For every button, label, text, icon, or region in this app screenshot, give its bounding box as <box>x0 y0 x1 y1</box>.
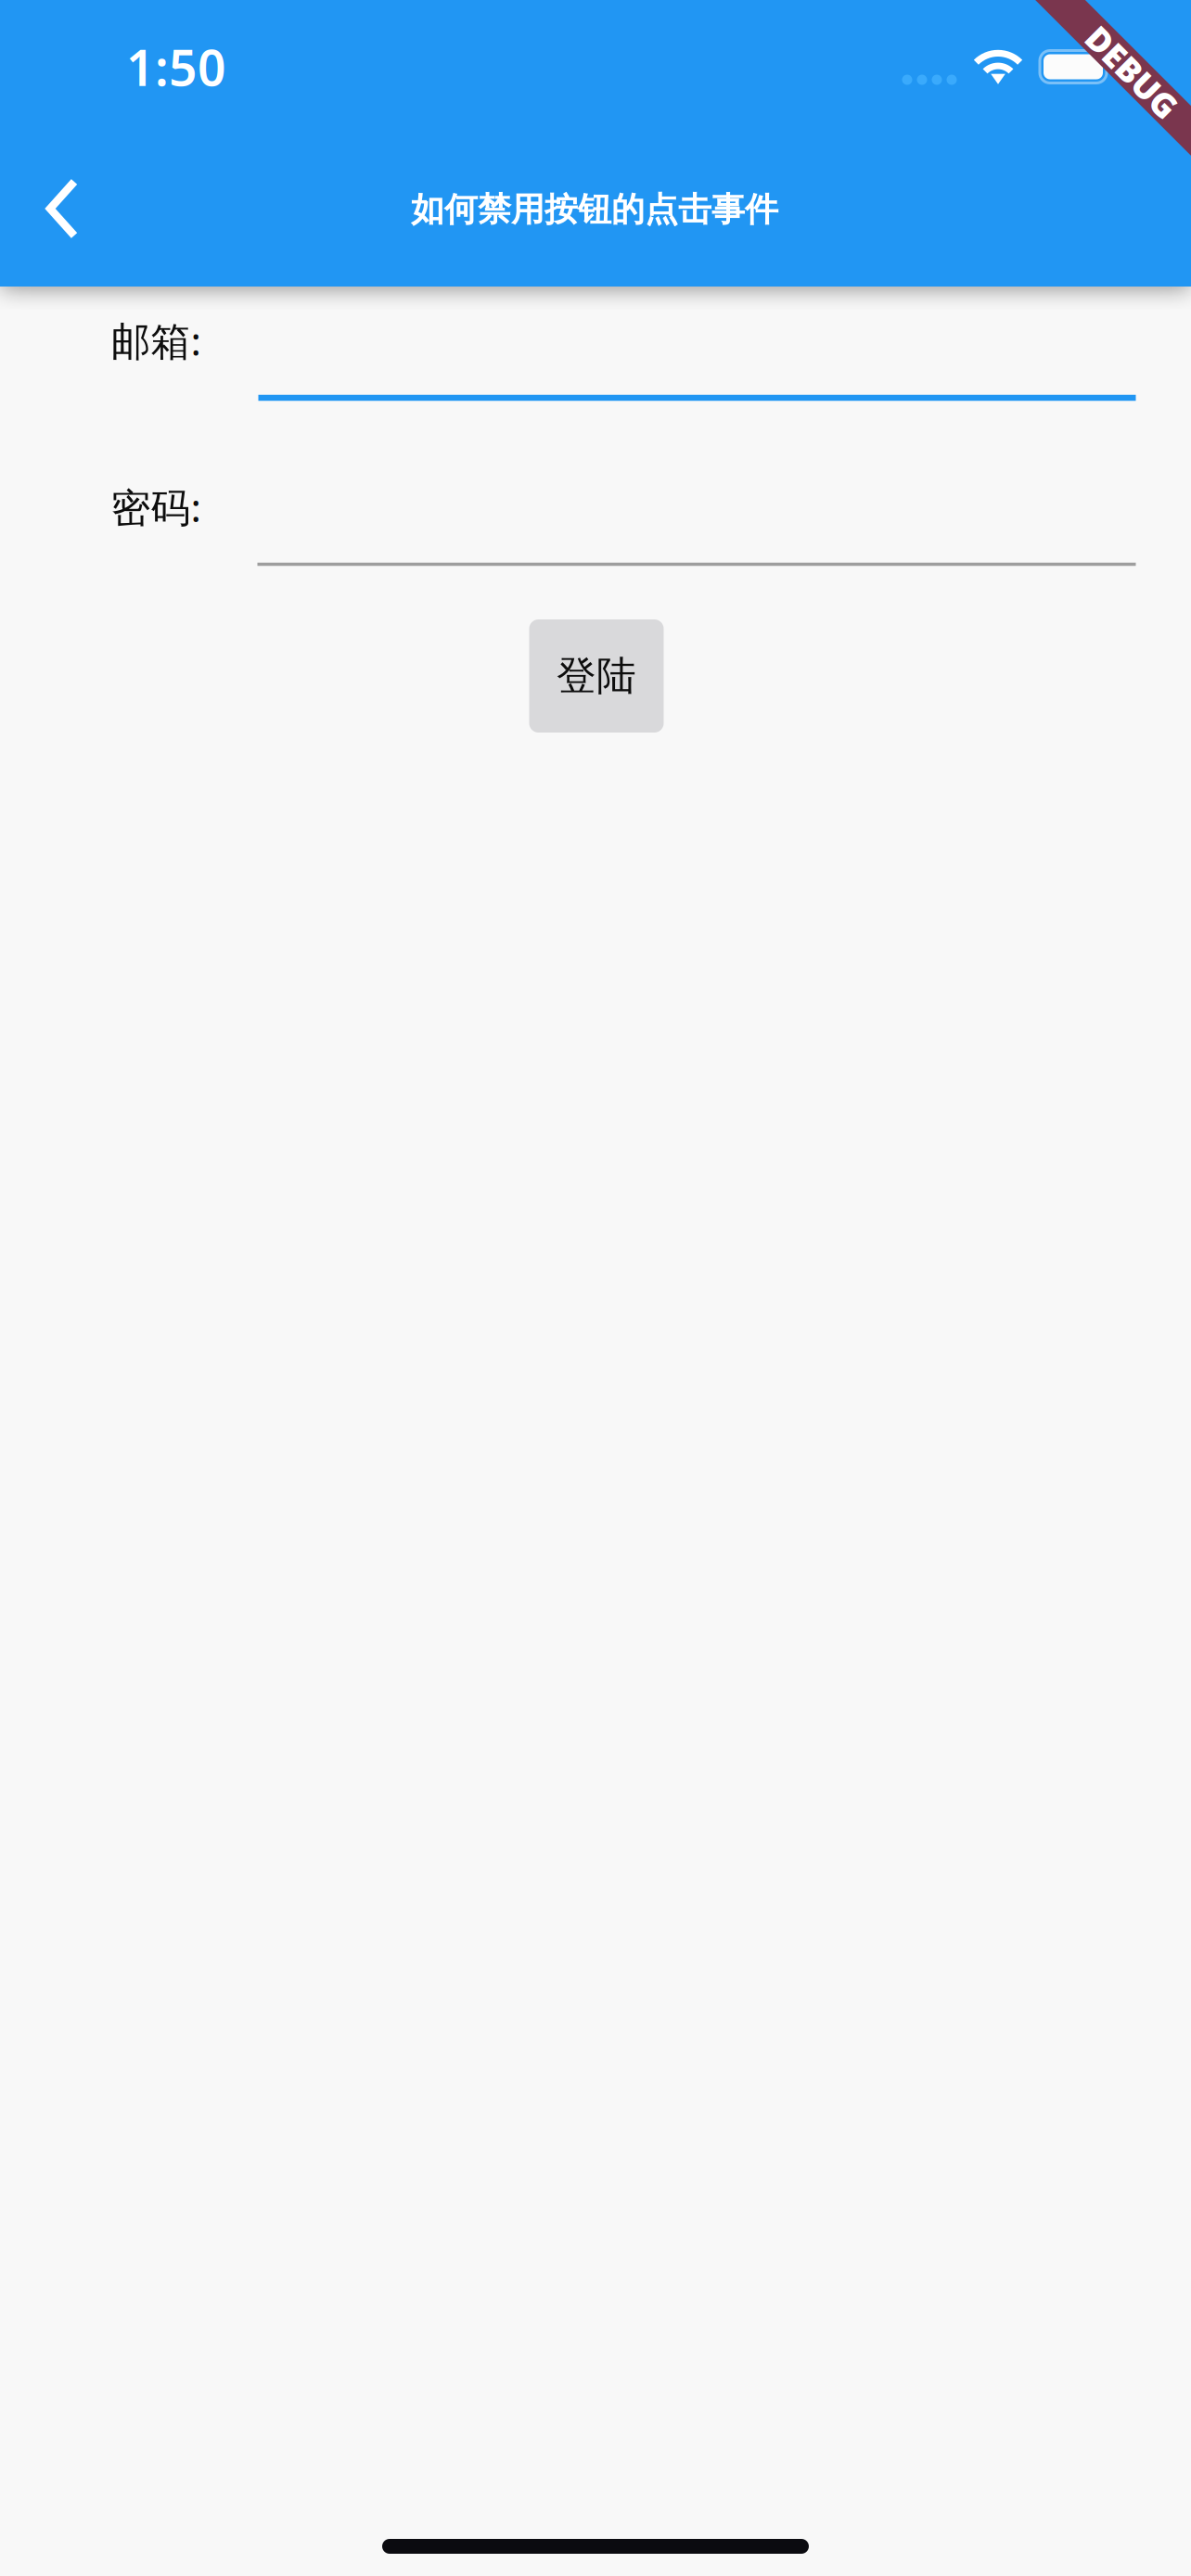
staticText: 密码: <box>111 481 201 533</box>
button[interactable]: 登陆 <box>529 619 664 733</box>
staticText: 登陆 <box>557 652 636 700</box>
button[interactable]: 邮箱: <box>56 315 1135 425</box>
staticText: 邮箱: <box>111 314 201 367</box>
button[interactable]: Back <box>2 148 122 269</box>
staticText: 1:50 <box>126 34 226 100</box>
staticText: 如何禁用按钮的点击事件 <box>411 189 778 230</box>
button[interactable]: 密码: <box>56 481 1135 591</box>
staticText: DEBUG <box>1077 44 1191 88</box>
